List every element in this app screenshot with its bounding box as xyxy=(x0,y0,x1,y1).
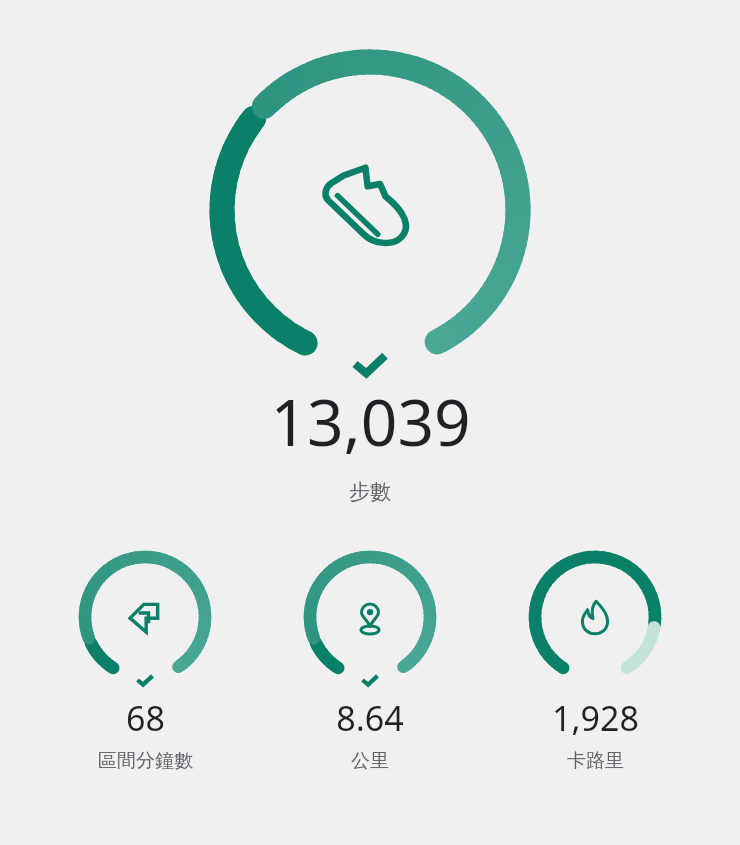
staticText: 卡路里 xyxy=(567,749,624,773)
button[interactable]: Calories xyxy=(515,543,675,773)
staticText: 1,928 xyxy=(552,695,639,741)
staticText: 區間分鐘數 xyxy=(98,749,193,773)
button[interactable]: Active minutes xyxy=(65,543,225,773)
staticText: 步數 xyxy=(349,479,391,505)
staticText: 13,039 xyxy=(270,378,471,465)
button[interactable]: Steps ring xyxy=(200,34,540,374)
staticText: 8.64 xyxy=(336,695,404,741)
staticText: 68 xyxy=(126,695,165,741)
button[interactable]: Distance xyxy=(290,543,450,773)
staticText: 公里 xyxy=(351,749,389,773)
